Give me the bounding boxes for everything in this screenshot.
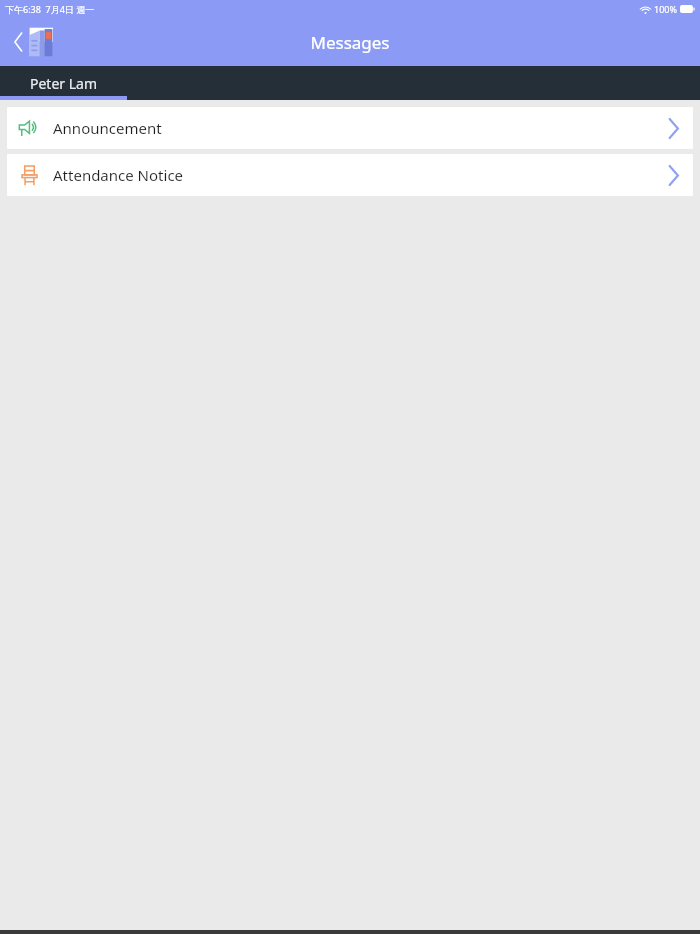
staticText: Attendance Notice: [53, 165, 668, 185]
staticText: Announcement: [53, 118, 668, 138]
button[interactable]: Back: [0, 18, 64, 66]
staticText: 100%: [654, 3, 677, 15]
button[interactable]: Peter Lam: [0, 66, 127, 100]
button[interactable]: Announcement: [7, 107, 693, 149]
button[interactable]: Attendance Notice: [7, 154, 693, 196]
staticText: 下午6:38 7月4日 週一: [5, 3, 95, 15]
staticText: Peter Lam: [30, 74, 98, 93]
staticText: Messages: [310, 31, 390, 54]
